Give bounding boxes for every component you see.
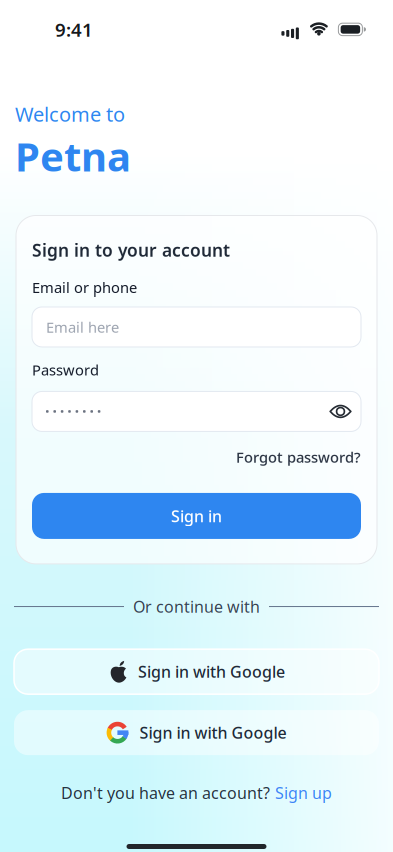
button[interactable]: Sign in with Google	[14, 649, 379, 694]
staticText: Sign up	[275, 782, 332, 803]
button[interactable]: Forgot password?	[236, 447, 361, 467]
staticText: Sign in	[171, 505, 222, 526]
staticText: Email here	[46, 317, 119, 337]
staticText: Petna	[15, 129, 131, 182]
button[interactable]: Show password	[329, 403, 352, 419]
staticText: Password	[32, 360, 99, 379]
staticText: Don't you have an account?	[61, 782, 270, 803]
button[interactable]: Sign up	[275, 782, 332, 803]
staticText: Forgot password?	[236, 447, 361, 467]
staticText: Sign in to your account	[32, 238, 230, 261]
staticText: Sign in with Google	[138, 661, 285, 682]
staticText: Or continue with	[133, 596, 260, 617]
staticText: Email or phone	[32, 277, 137, 297]
staticText: 9:41	[55, 17, 93, 42]
staticText: Welcome to	[15, 101, 125, 127]
staticText: Sign in with Google	[139, 722, 286, 743]
button[interactable]: Sign in	[32, 493, 361, 539]
button[interactable]: Sign in with Google	[14, 710, 379, 755]
